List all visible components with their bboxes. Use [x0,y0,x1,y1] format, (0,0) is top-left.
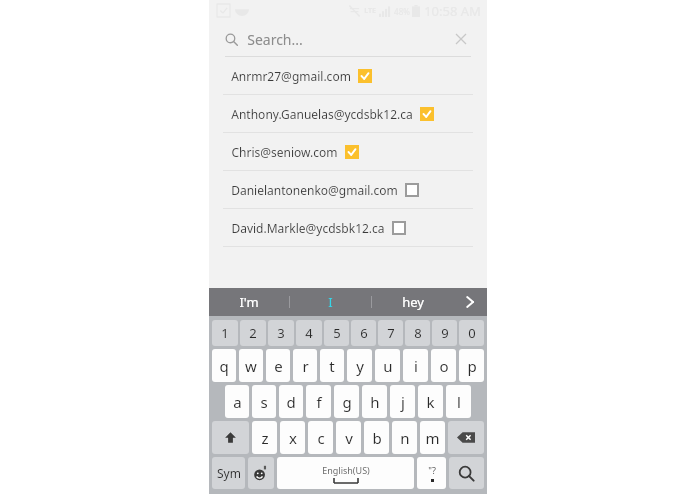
button[interactable]: Danielantonenko@gmail.com [231,171,487,208]
staticText: 9 [441,324,449,342]
staticText: a [233,392,242,412]
staticText: k [426,392,435,412]
staticText: e [274,356,283,376]
button[interactable]: z [252,421,277,454]
staticText: w [245,356,257,376]
staticText: j [401,392,405,412]
staticText: z [261,428,269,448]
staticText: b [372,428,382,448]
button[interactable]: q [212,349,236,382]
staticText: 1 [221,324,229,342]
staticText: n [400,428,410,448]
button[interactable]: e [266,349,290,382]
button[interactable]: Sym [212,457,245,489]
button[interactable]: c [308,421,333,454]
staticText: English(US) [322,464,370,476]
staticText: 8 [414,324,422,342]
staticText: Sym [217,465,241,481]
staticText: i [414,356,418,376]
button[interactable]: I'm [209,288,289,316]
button[interactable]: j [390,385,415,418]
button[interactable]: d [279,385,303,418]
staticText: u [383,356,393,376]
button[interactable]: hey [372,288,453,316]
button[interactable]: g [334,385,359,418]
button[interactable]: r [293,349,317,382]
button[interactable]: Chris@seniow.com [231,133,487,170]
staticText: LTE [364,6,376,16]
staticText: 4 [305,324,313,342]
button[interactable]: 9 [432,320,457,346]
button[interactable]: Anrmr27@gmail.com [231,57,487,94]
staticText: x [289,428,297,448]
button[interactable]: 1 [212,320,238,346]
staticText: Anrmr27@gmail.com [231,68,351,84]
staticText: "? [428,464,436,476]
button[interactable]: 0 [459,320,484,346]
staticText: l [457,392,461,412]
button[interactable]: 5 [324,320,349,346]
button[interactable]: Backspace [448,421,484,454]
button[interactable]: v [336,421,361,454]
button[interactable]: x [280,421,305,454]
staticText: r [302,356,309,376]
staticText: hey [402,293,424,311]
staticText: c [317,428,325,448]
staticText: m [425,428,440,448]
staticText: Danielantonenko@gmail.com [231,182,398,198]
button[interactable]: Anthony.Ganuelas@ycdsbk12.ca [231,95,487,132]
staticText: David.Markle@ycdsbk12.ca [231,220,385,236]
button[interactable]: t [320,349,344,382]
button[interactable]: David.Markle@ycdsbk12.ca [231,209,487,246]
staticText: 7 [387,324,395,342]
button[interactable]: f [306,385,331,418]
staticText: 10:58 AM [424,2,481,20]
button[interactable]: m [420,421,445,454]
button[interactable]: k [418,385,443,418]
staticText: 0 [468,324,476,342]
staticText: I'm [239,293,259,311]
button[interactable]: More suggestions [453,288,487,316]
button[interactable]: 4 [296,320,322,346]
staticText: 5 [333,324,341,342]
staticText: f [316,392,322,412]
button[interactable]: n [392,421,417,454]
button[interactable]: 6 [351,320,376,346]
button[interactable]: "? [417,457,446,489]
button[interactable]: o [431,349,456,382]
button[interactable]: 8 [405,320,430,346]
button[interactable]: h [362,385,387,418]
staticText: q [219,356,229,376]
staticText: o [439,356,449,376]
button[interactable]: 3 [268,320,294,346]
button[interactable]: a [225,385,249,418]
button[interactable]: Shift [212,421,249,454]
staticText: t [329,356,335,376]
button[interactable]: Search [449,457,484,489]
button[interactable]: u [375,349,400,382]
staticText: 3 [277,324,285,342]
button[interactable]: 7 [378,320,403,346]
staticText: Anthony.Ganuelas@ycdsbk12.ca [231,106,413,122]
staticText: h [370,392,380,412]
button[interactable]: l [446,385,471,418]
button[interactable]: Emoji and voice input [248,457,274,489]
staticText: g [342,392,352,412]
staticText: Chris@seniow.com [231,144,338,160]
staticText: Search... [247,30,303,49]
button[interactable]: w [239,349,263,382]
staticText: p [467,356,477,376]
button[interactable]: English(US) [277,457,414,489]
button[interactable]: y [347,349,372,382]
staticText: 48% [394,6,410,17]
button[interactable]: 2 [240,320,266,346]
button[interactable]: Clear search [451,29,471,49]
button[interactable]: p [459,349,484,382]
button[interactable]: i [403,349,428,382]
button[interactable]: s [252,385,276,418]
staticText: v [345,428,353,448]
staticText: 2 [249,324,257,342]
button[interactable]: I [290,288,371,316]
staticText: d [286,392,296,412]
button[interactable]: b [364,421,389,454]
